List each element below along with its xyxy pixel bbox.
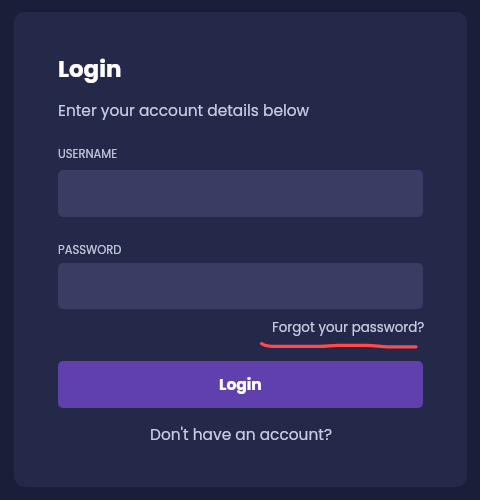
staticText: Login [58, 53, 122, 85]
staticText: USERNAME [58, 146, 118, 162]
staticText: Enter your account details below [58, 100, 310, 122]
staticText: Forgot your password? [272, 318, 425, 337]
button[interactable]: Don't have an account? [150, 424, 332, 446]
staticText: Don't have an account? [150, 424, 332, 446]
staticText: Login [219, 374, 262, 396]
staticText: PASSWORD [58, 242, 122, 258]
button[interactable]: Forgot your password? [272, 318, 425, 337]
button[interactable]: Login [58, 361, 423, 408]
